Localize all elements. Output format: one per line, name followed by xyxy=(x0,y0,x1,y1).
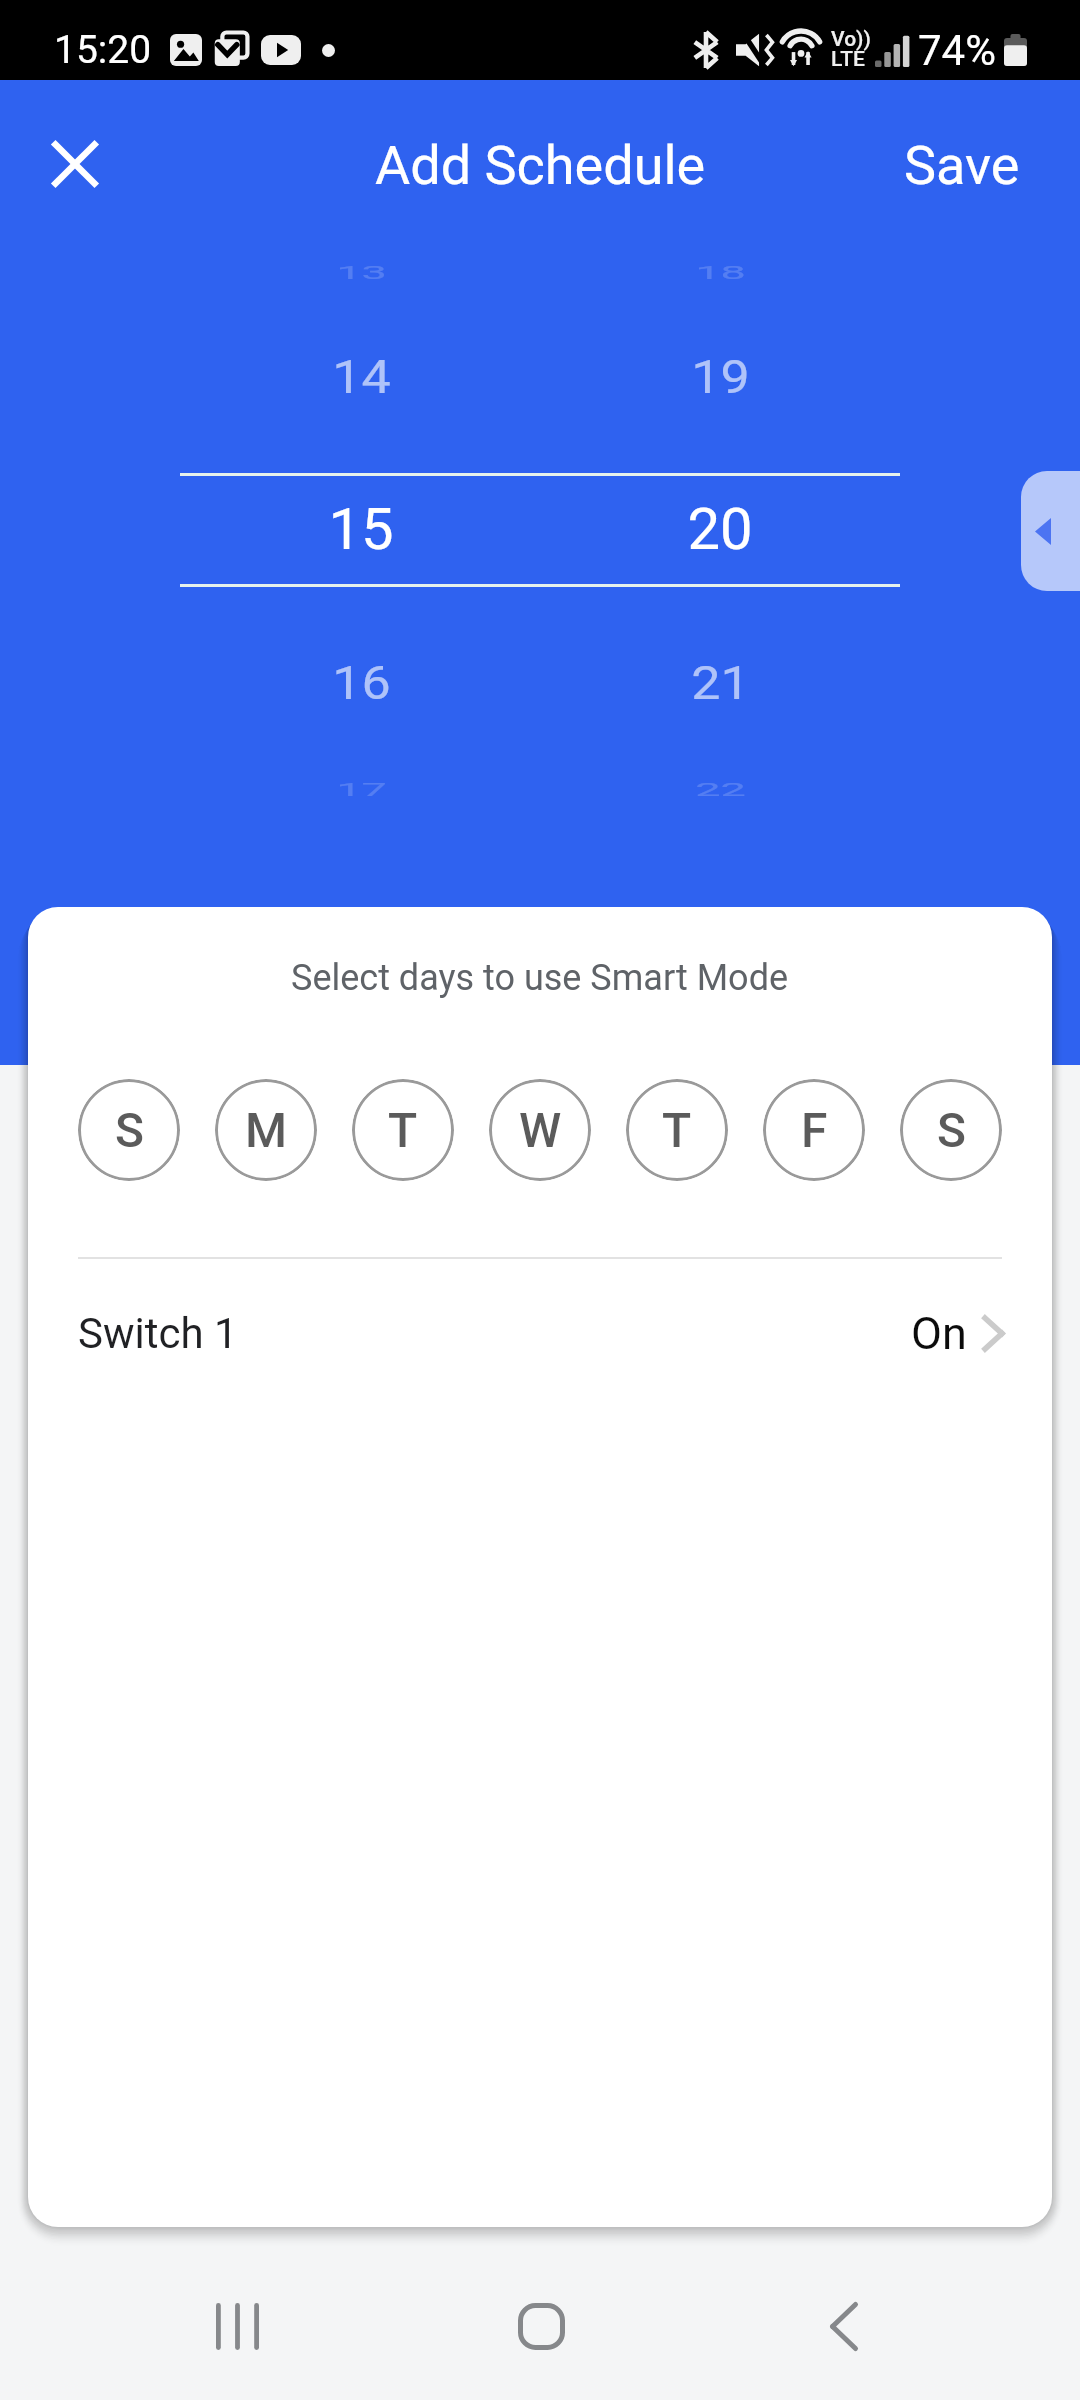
staticText: 16 xyxy=(332,656,391,711)
staticText: Switch 1 xyxy=(78,1309,238,1358)
button[interactable]: S xyxy=(900,1079,1002,1181)
staticText: T xyxy=(388,1102,418,1158)
staticText: 74% xyxy=(918,26,996,75)
button[interactable]: M xyxy=(215,1079,317,1181)
staticText: 15:20 xyxy=(54,27,152,73)
button[interactable]: T xyxy=(626,1079,728,1181)
button[interactable]: Open side panel xyxy=(1021,471,1080,591)
staticText: Vo)) xyxy=(831,27,871,52)
button[interactable]: Save xyxy=(884,120,1040,211)
button[interactable]: Close xyxy=(27,116,123,212)
button[interactable]: W xyxy=(489,1079,591,1181)
button[interactable]: Home xyxy=(476,2289,606,2363)
staticText: On xyxy=(911,1307,967,1360)
staticText: Add Schedule xyxy=(375,134,706,197)
staticText: 21 xyxy=(691,656,750,711)
button[interactable]: F xyxy=(763,1079,865,1181)
staticText: 17 xyxy=(336,779,387,800)
button[interactable]: T xyxy=(352,1079,454,1181)
button[interactable]: Back xyxy=(779,2289,909,2363)
staticText: 20 xyxy=(687,495,753,563)
staticText: Select days to use Smart Mode xyxy=(291,957,789,999)
staticText: 15 xyxy=(328,495,394,563)
staticText: 18 xyxy=(695,262,746,283)
button[interactable]: Switch 1 xyxy=(28,1272,1052,1394)
staticText: Save xyxy=(904,134,1020,197)
staticText: M xyxy=(245,1102,288,1158)
staticText: LTE xyxy=(831,47,865,72)
staticText: F xyxy=(801,1102,828,1158)
staticText: 13 xyxy=(336,262,387,283)
staticText: S xyxy=(115,1102,144,1158)
staticText: T xyxy=(662,1102,692,1158)
staticText: S xyxy=(937,1102,966,1158)
staticText: W xyxy=(519,1102,562,1158)
staticText: 22 xyxy=(695,779,746,800)
button[interactable]: Recent apps xyxy=(172,2289,302,2363)
staticText: 19 xyxy=(691,350,750,405)
button[interactable]: S xyxy=(78,1079,180,1181)
staticText: 14 xyxy=(332,350,391,405)
